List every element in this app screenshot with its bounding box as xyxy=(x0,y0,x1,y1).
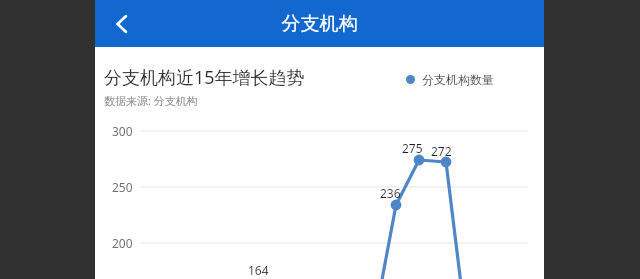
staticText: 300 xyxy=(112,123,133,139)
staticText: 236 xyxy=(380,185,401,201)
button[interactable]: Back xyxy=(101,3,143,45)
staticText: 分支机构近15年增长趋势 xyxy=(104,65,305,90)
staticText: 275 xyxy=(402,140,423,156)
button[interactable]: 分支机构数量 xyxy=(406,72,494,87)
staticText: 数据来源: 分支机构 xyxy=(104,93,198,108)
staticText: 分支机构 xyxy=(95,12,544,36)
staticText: 164 xyxy=(248,262,269,278)
staticText: 272 xyxy=(431,143,452,159)
staticText: 分支机构数量 xyxy=(422,72,494,87)
staticText: 200 xyxy=(112,235,133,251)
staticText: 250 xyxy=(112,179,133,195)
